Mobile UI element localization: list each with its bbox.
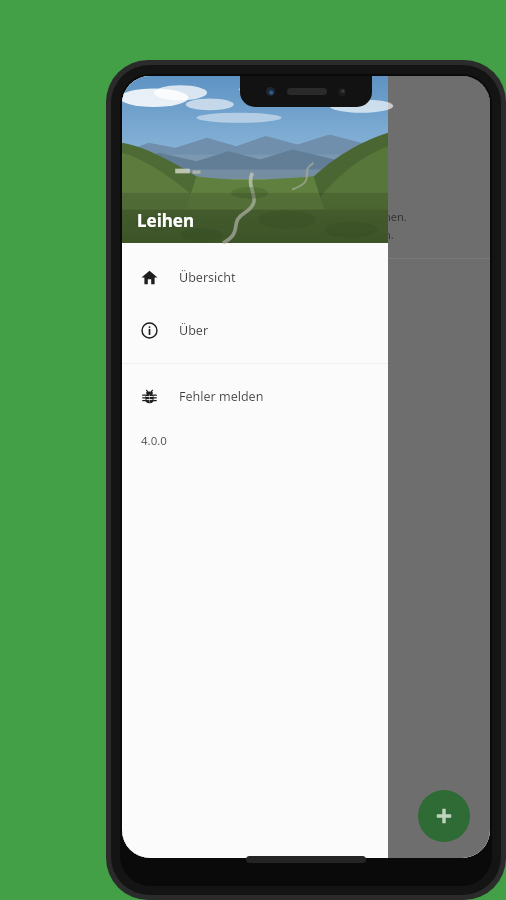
staticText: Übersicht: [179, 269, 236, 286]
button[interactable]: Über: [122, 304, 388, 357]
button[interactable]: Fehler melden: [122, 370, 388, 423]
staticText: hen.: [384, 209, 407, 224]
button[interactable]: Übersicht: [122, 251, 388, 304]
button[interactable]: Hinzufügen: [418, 790, 470, 842]
staticText: Zweite Zeile mit weiteren Informationen.: [148, 262, 359, 277]
staticText: 4.0.0: [141, 433, 167, 449]
staticText: n.: [384, 227, 394, 242]
staticText: Leihen: [137, 209, 194, 232]
staticText: Über: [179, 322, 209, 339]
staticText: Fehler melden: [179, 388, 264, 405]
